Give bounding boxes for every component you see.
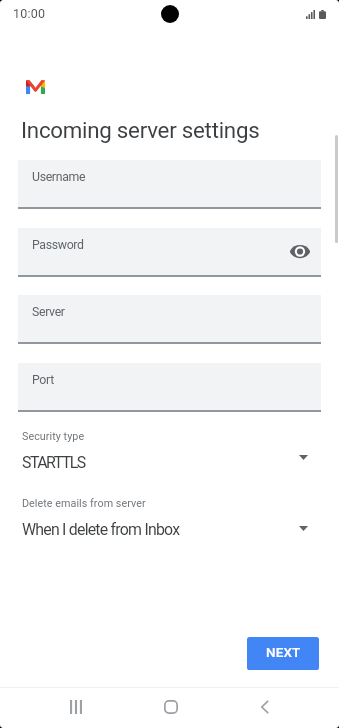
button[interactable]: Delete emails from server: [0, 497, 339, 541]
staticText: NEXT: [266, 645, 301, 661]
staticText: When I delete from Inbox: [22, 520, 180, 539]
staticText: Password: [32, 238, 84, 252]
staticText: Server: [32, 305, 65, 319]
button[interactable]: Port: [18, 363, 321, 412]
staticText: STARTTLS: [22, 453, 85, 472]
staticText: 10:00: [13, 6, 46, 21]
button[interactable]: Username: [18, 160, 321, 209]
staticText: Username: [32, 170, 86, 184]
button[interactable]: NEXT: [247, 637, 319, 670]
staticText: Security type: [22, 430, 85, 443]
button[interactable]: Password: [18, 228, 321, 277]
button[interactable]: Home: [147, 687, 195, 727]
button[interactable]: Recent apps: [52, 687, 100, 727]
button[interactable]: Security type: [0, 430, 339, 474]
staticText: Port: [32, 373, 54, 387]
button[interactable]: Back: [241, 687, 289, 727]
button[interactable]: Server: [18, 295, 321, 344]
button[interactable]: Show password: [287, 238, 313, 264]
staticText: Delete emails from server: [22, 497, 146, 510]
staticText: Incoming server settings: [21, 117, 260, 143]
